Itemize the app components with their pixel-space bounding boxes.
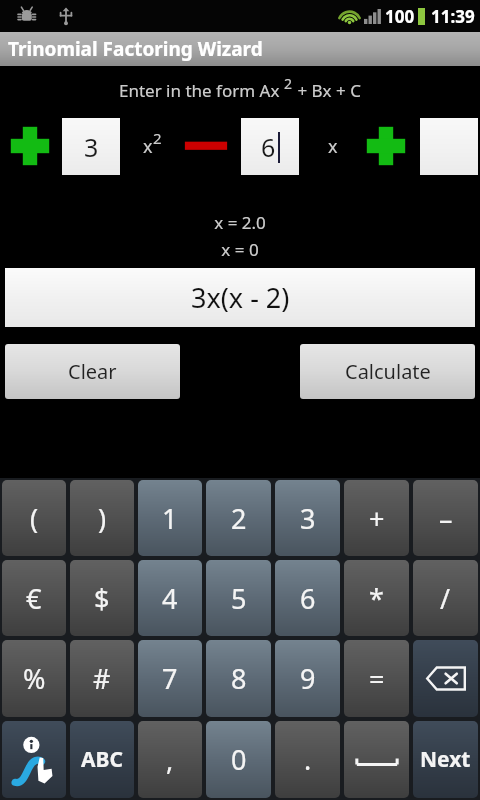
button[interactable]: 6 <box>275 560 340 636</box>
button[interactable]: Toggle sign, minus <box>182 122 230 170</box>
staticText: Calculate <box>345 358 431 385</box>
staticText: 100 <box>385 5 415 28</box>
button[interactable]: 9 <box>275 640 340 717</box>
staticText: # <box>93 660 111 697</box>
button[interactable]: 1 <box>138 480 202 556</box>
staticText: / <box>440 580 451 617</box>
button[interactable]: 3 <box>62 118 120 175</box>
staticText: ) <box>98 500 107 537</box>
button[interactable]: 4 <box>138 560 202 636</box>
button[interactable]: Next <box>413 721 478 798</box>
button[interactable]: Space <box>344 721 409 798</box>
button[interactable]: * <box>344 560 409 636</box>
button[interactable]: ( <box>2 480 66 556</box>
staticText: 5 <box>231 580 247 617</box>
button[interactable]: + <box>344 480 409 556</box>
button[interactable]: 0 <box>206 721 271 798</box>
button[interactable]: 2 <box>206 480 271 556</box>
button[interactable]: . <box>275 721 340 798</box>
button[interactable]: , <box>138 721 202 798</box>
staticText: 3 <box>84 130 99 164</box>
staticText: ( <box>30 500 39 537</box>
staticText: 11:39 <box>431 5 475 28</box>
button[interactable]: $ <box>70 560 134 636</box>
staticText: . <box>304 741 312 778</box>
staticText: 2 <box>231 500 247 537</box>
staticText: * <box>369 580 384 617</box>
staticText: + <box>369 500 385 537</box>
button[interactable]: Toggle sign, plus <box>6 122 54 170</box>
staticText: 7 <box>162 660 178 697</box>
button[interactable]: Clear <box>5 344 180 399</box>
button[interactable]: ABC <box>70 721 134 798</box>
button[interactable]: Calculate <box>300 344 475 399</box>
staticText: 3 <box>300 500 316 537</box>
button[interactable]: 5 <box>206 560 271 636</box>
staticText: 6 <box>261 130 276 164</box>
staticText: = <box>369 660 385 697</box>
staticText: x <box>143 134 153 159</box>
button[interactable]: 3x(x - 2) <box>5 268 475 327</box>
button[interactable]: % <box>2 640 66 717</box>
staticText: $ <box>94 580 110 617</box>
button[interactable]: ) <box>70 480 134 556</box>
button[interactable]: 6 <box>241 118 299 175</box>
staticText: x = 0 <box>221 238 259 261</box>
staticText: € <box>26 580 42 617</box>
staticText: 3x(x - 2) <box>191 279 290 316</box>
button[interactable]: = <box>344 640 409 717</box>
button[interactable]: Swype help and settings <box>2 721 66 798</box>
staticText: + Bx + C <box>293 79 361 102</box>
button[interactable] <box>420 118 478 175</box>
button[interactable]: 3 <box>275 480 340 556</box>
staticText: x = 2.0 <box>214 211 266 234</box>
staticText: 9 <box>300 660 316 697</box>
button[interactable]: Toggle sign, plus <box>362 122 410 170</box>
staticText: 8 <box>231 660 247 697</box>
button[interactable]: Backspace <box>413 640 478 717</box>
staticText: % <box>23 660 46 697</box>
staticText: ABC <box>81 745 123 774</box>
staticText: 4 <box>162 580 178 617</box>
staticText: 2 <box>153 128 162 148</box>
staticText: Trinomial Factoring Wizard <box>8 36 263 62</box>
staticText: Enter in the form Ax <box>119 79 284 102</box>
staticText: x <box>328 134 338 159</box>
staticText: 2 <box>284 74 293 93</box>
button[interactable]: – <box>413 480 478 556</box>
staticText: Next <box>420 745 471 774</box>
button[interactable]: 8 <box>206 640 271 717</box>
staticText: 0 <box>231 741 247 778</box>
staticText: – <box>439 500 453 537</box>
staticText: , <box>166 741 174 778</box>
button[interactable]: / <box>413 560 478 636</box>
staticText: Clear <box>68 358 117 385</box>
button[interactable]: € <box>2 560 66 636</box>
staticText: 1 <box>162 500 178 537</box>
button[interactable]: # <box>70 640 134 717</box>
staticText: 6 <box>300 580 316 617</box>
button[interactable]: 7 <box>138 640 202 717</box>
